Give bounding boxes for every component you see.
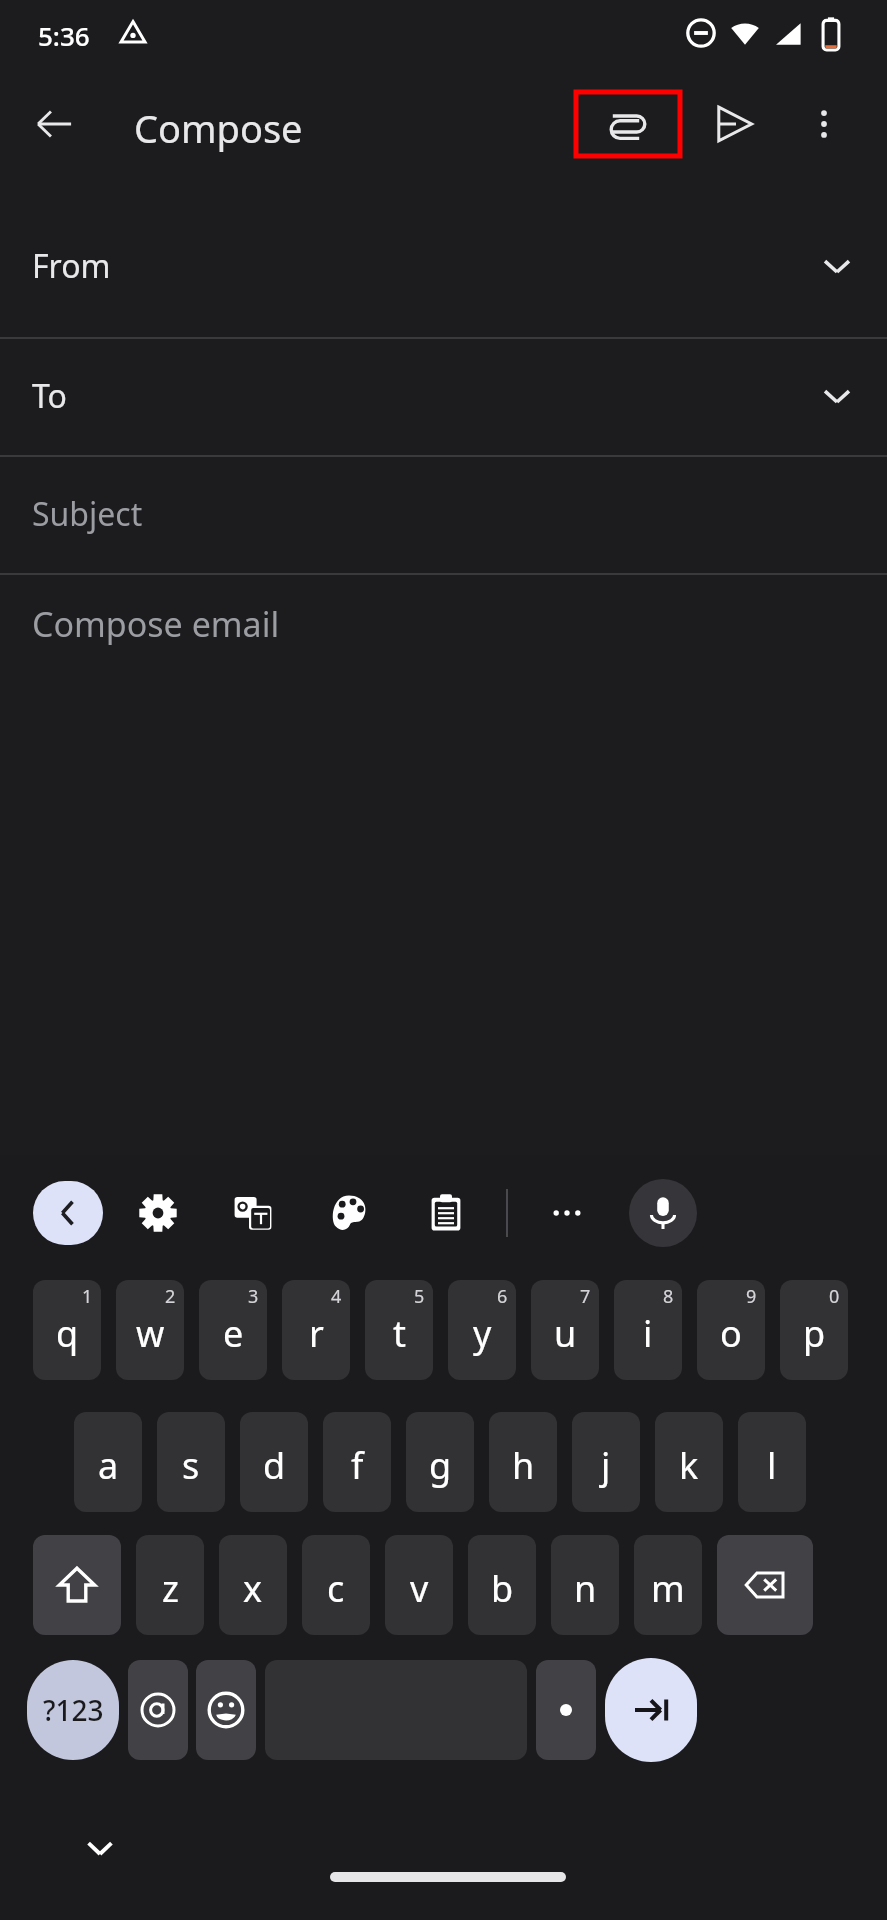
- staticText: w: [136, 1309, 165, 1358]
- button[interactable]: Compose email: [0, 573, 887, 953]
- staticText: ?123: [43, 1691, 104, 1729]
- staticText: s: [182, 1441, 200, 1490]
- staticText: f: [351, 1441, 364, 1490]
- button[interactable]: Expand To: [807, 366, 867, 426]
- button[interactable]: w: [116, 1280, 184, 1380]
- button[interactable]: Subject: [0, 455, 887, 573]
- staticText: p: [803, 1309, 826, 1358]
- button[interactable]: a: [74, 1412, 142, 1512]
- button[interactable]: ?123: [27, 1660, 119, 1760]
- staticText: 5:36: [38, 18, 90, 53]
- button[interactable]: Emoji: [196, 1660, 256, 1760]
- button[interactable]: s: [157, 1412, 225, 1512]
- staticText: v: [410, 1564, 429, 1613]
- staticText: b: [491, 1564, 514, 1613]
- staticText: l: [767, 1441, 777, 1490]
- button[interactable]: y: [448, 1280, 516, 1380]
- button[interactable]: Translate: [221, 1181, 285, 1245]
- staticText: a: [98, 1441, 119, 1490]
- button[interactable]: Hide keyboard: [70, 1818, 130, 1878]
- button[interactable]: d: [240, 1412, 308, 1512]
- staticText: 2: [165, 1284, 176, 1309]
- button[interactable]: c: [302, 1535, 370, 1635]
- staticText: y: [473, 1309, 492, 1358]
- button[interactable]: From: [0, 174, 887, 337]
- staticText: m: [651, 1564, 685, 1613]
- button[interactable]: Attach file: [576, 92, 680, 156]
- button[interactable]: Enter: [605, 1658, 697, 1762]
- button[interactable]: r: [282, 1280, 350, 1380]
- button[interactable]: More tools: [535, 1181, 599, 1245]
- button[interactable]: k: [655, 1412, 723, 1512]
- button[interactable]: At sign: [128, 1660, 188, 1760]
- button[interactable]: m: [634, 1535, 702, 1635]
- staticText: h: [512, 1441, 535, 1490]
- staticText: From: [32, 244, 111, 288]
- button[interactable]: q: [33, 1280, 101, 1380]
- button[interactable]: g: [406, 1412, 474, 1512]
- staticText: c: [327, 1564, 345, 1613]
- staticText: z: [162, 1564, 179, 1613]
- button[interactable]: z: [136, 1535, 204, 1635]
- staticText: Compose: [134, 102, 303, 154]
- staticText: e: [223, 1309, 244, 1358]
- staticText: 3: [248, 1284, 259, 1309]
- button[interactable]: Send: [700, 90, 768, 158]
- staticText: o: [720, 1309, 742, 1358]
- button[interactable]: b: [468, 1535, 536, 1635]
- button[interactable]: j: [572, 1412, 640, 1512]
- button[interactable]: Close toolbar: [33, 1181, 103, 1245]
- button[interactable]: Backspace: [717, 1535, 813, 1635]
- button[interactable]: u: [531, 1280, 599, 1380]
- button[interactable]: Back: [20, 90, 88, 158]
- button[interactable]: x: [219, 1535, 287, 1635]
- staticText: Subject: [32, 492, 143, 536]
- staticText: k: [679, 1441, 699, 1490]
- staticText: t: [393, 1309, 406, 1358]
- staticText: 0: [829, 1284, 840, 1309]
- button[interactable]: e: [199, 1280, 267, 1380]
- button[interactable]: h: [489, 1412, 557, 1512]
- button[interactable]: More options: [790, 90, 858, 158]
- staticText: q: [56, 1309, 79, 1358]
- button[interactable]: i: [614, 1280, 682, 1380]
- staticText: u: [554, 1309, 577, 1358]
- button[interactable]: Period: [536, 1660, 596, 1760]
- button[interactable]: Voice input: [629, 1179, 697, 1247]
- staticText: g: [429, 1441, 452, 1490]
- button[interactable]: Shift: [33, 1535, 121, 1635]
- staticText: 9: [746, 1284, 757, 1309]
- staticText: d: [263, 1441, 286, 1490]
- staticText: 1: [82, 1284, 93, 1309]
- staticText: 4: [331, 1284, 342, 1309]
- button[interactable]: o: [697, 1280, 765, 1380]
- button[interactable]: p: [780, 1280, 848, 1380]
- button[interactable]: Themes: [317, 1181, 381, 1245]
- staticText: 8: [663, 1284, 674, 1309]
- staticText: 5: [414, 1284, 425, 1309]
- staticText: To: [32, 374, 67, 418]
- staticText: 7: [580, 1284, 591, 1309]
- button[interactable]: v: [385, 1535, 453, 1635]
- staticText: i: [643, 1309, 653, 1358]
- button[interactable]: Expand From: [807, 236, 867, 296]
- button[interactable]: Clipboard: [414, 1181, 478, 1245]
- button[interactable]: Settings: [126, 1181, 190, 1245]
- staticText: n: [574, 1564, 597, 1613]
- staticText: r: [309, 1309, 324, 1358]
- staticText: j: [601, 1441, 611, 1490]
- staticText: 6: [497, 1284, 508, 1309]
- staticText: x: [243, 1564, 263, 1613]
- button[interactable]: f: [323, 1412, 391, 1512]
- button[interactable]: n: [551, 1535, 619, 1635]
- button[interactable]: t: [365, 1280, 433, 1380]
- button[interactable]: l: [738, 1412, 806, 1512]
- staticText: Compose email: [32, 601, 280, 647]
- button[interactable]: To: [0, 337, 887, 455]
